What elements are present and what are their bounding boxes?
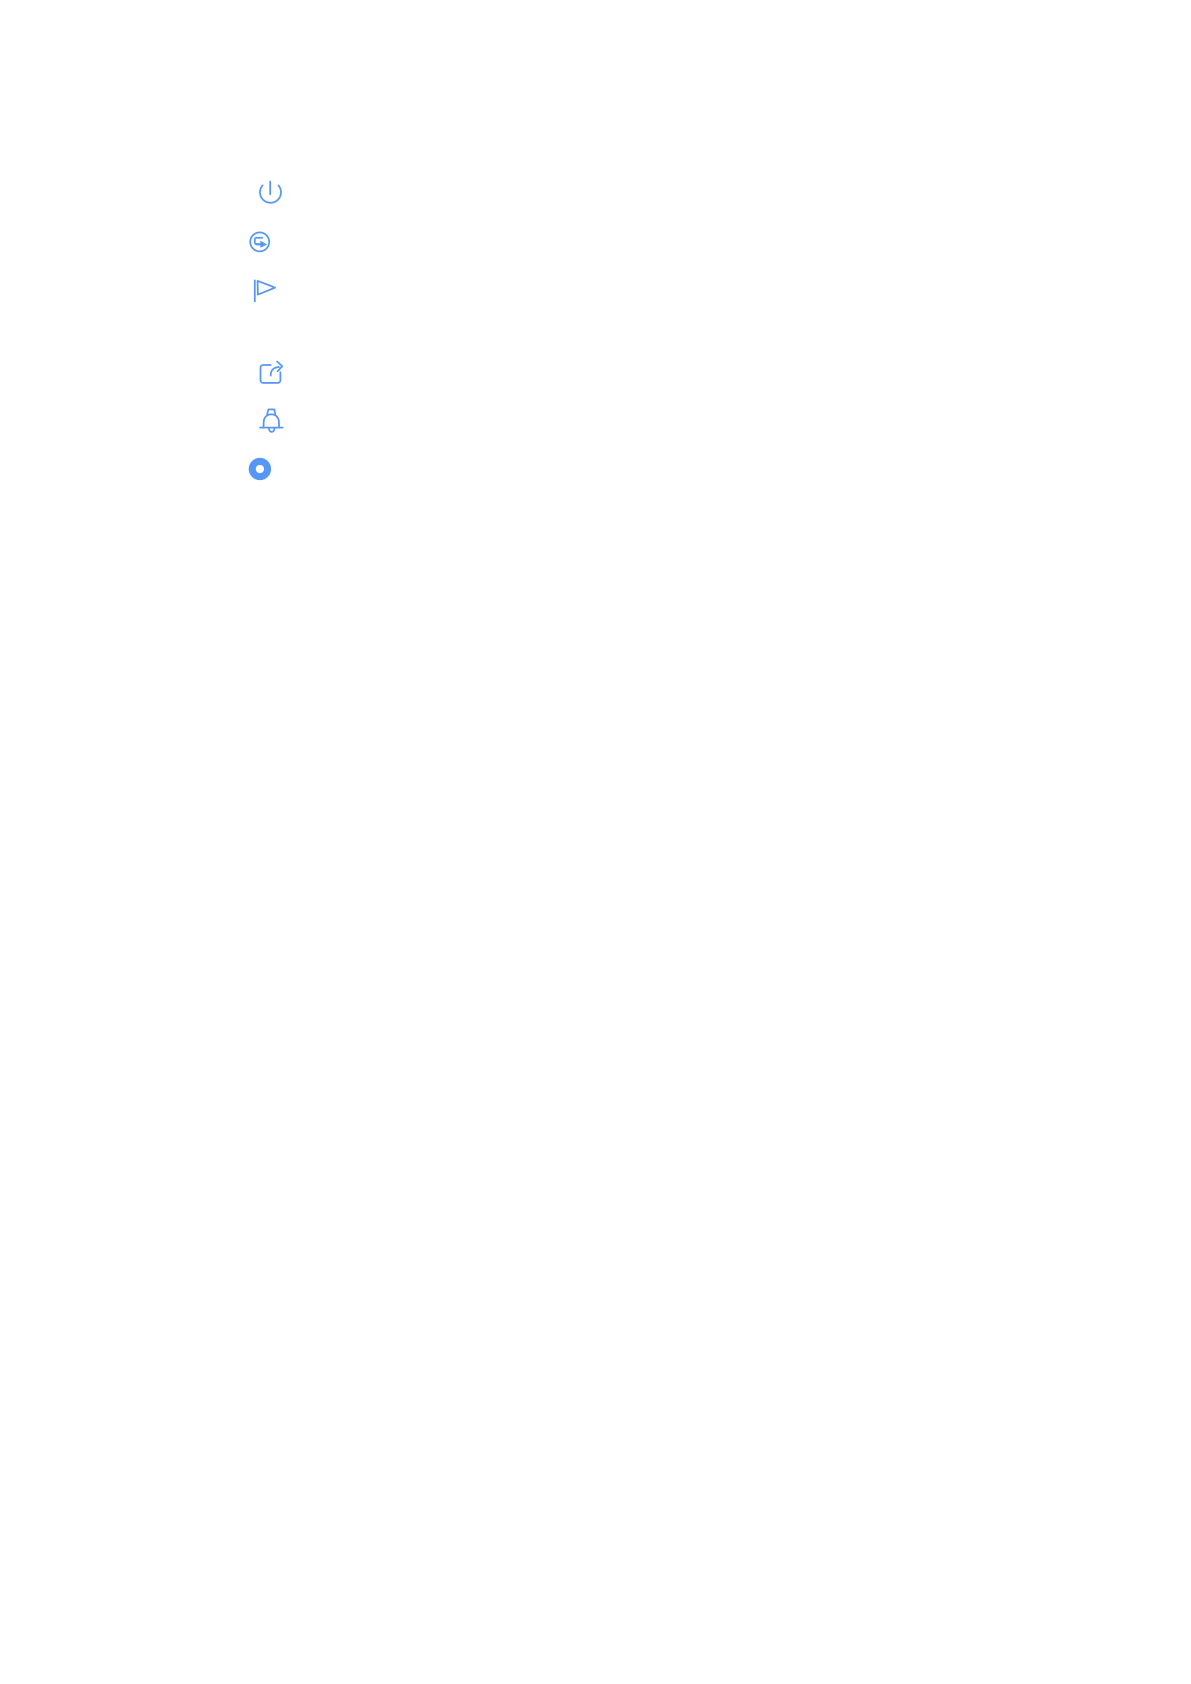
button[interactable]: Flag <box>246 266 1191 315</box>
button[interactable]: Power <box>246 168 1191 217</box>
button[interactable]: Notifications <box>246 396 1191 445</box>
button[interactable]: Record <box>246 445 1191 494</box>
button[interactable]: Share <box>246 347 1191 396</box>
button[interactable]: Sign Out <box>246 217 1191 266</box>
